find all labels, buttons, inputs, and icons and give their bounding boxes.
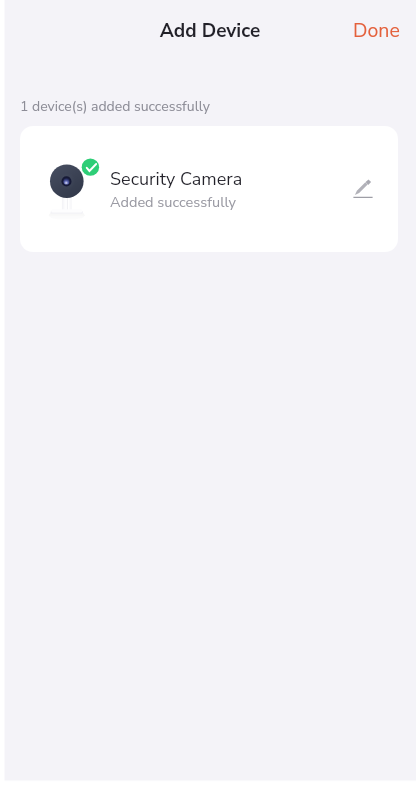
staticText: Add Device xyxy=(2,18,416,44)
button[interactable]: Security Camera xyxy=(20,126,398,252)
staticText: Security Camera xyxy=(110,167,243,192)
button[interactable]: Rename device xyxy=(345,170,381,206)
staticText: Done xyxy=(353,17,400,44)
button[interactable]: Done xyxy=(335,8,416,55)
staticText: Added successfully xyxy=(110,192,237,212)
staticText: 1 device(s) added successfully xyxy=(20,97,210,116)
